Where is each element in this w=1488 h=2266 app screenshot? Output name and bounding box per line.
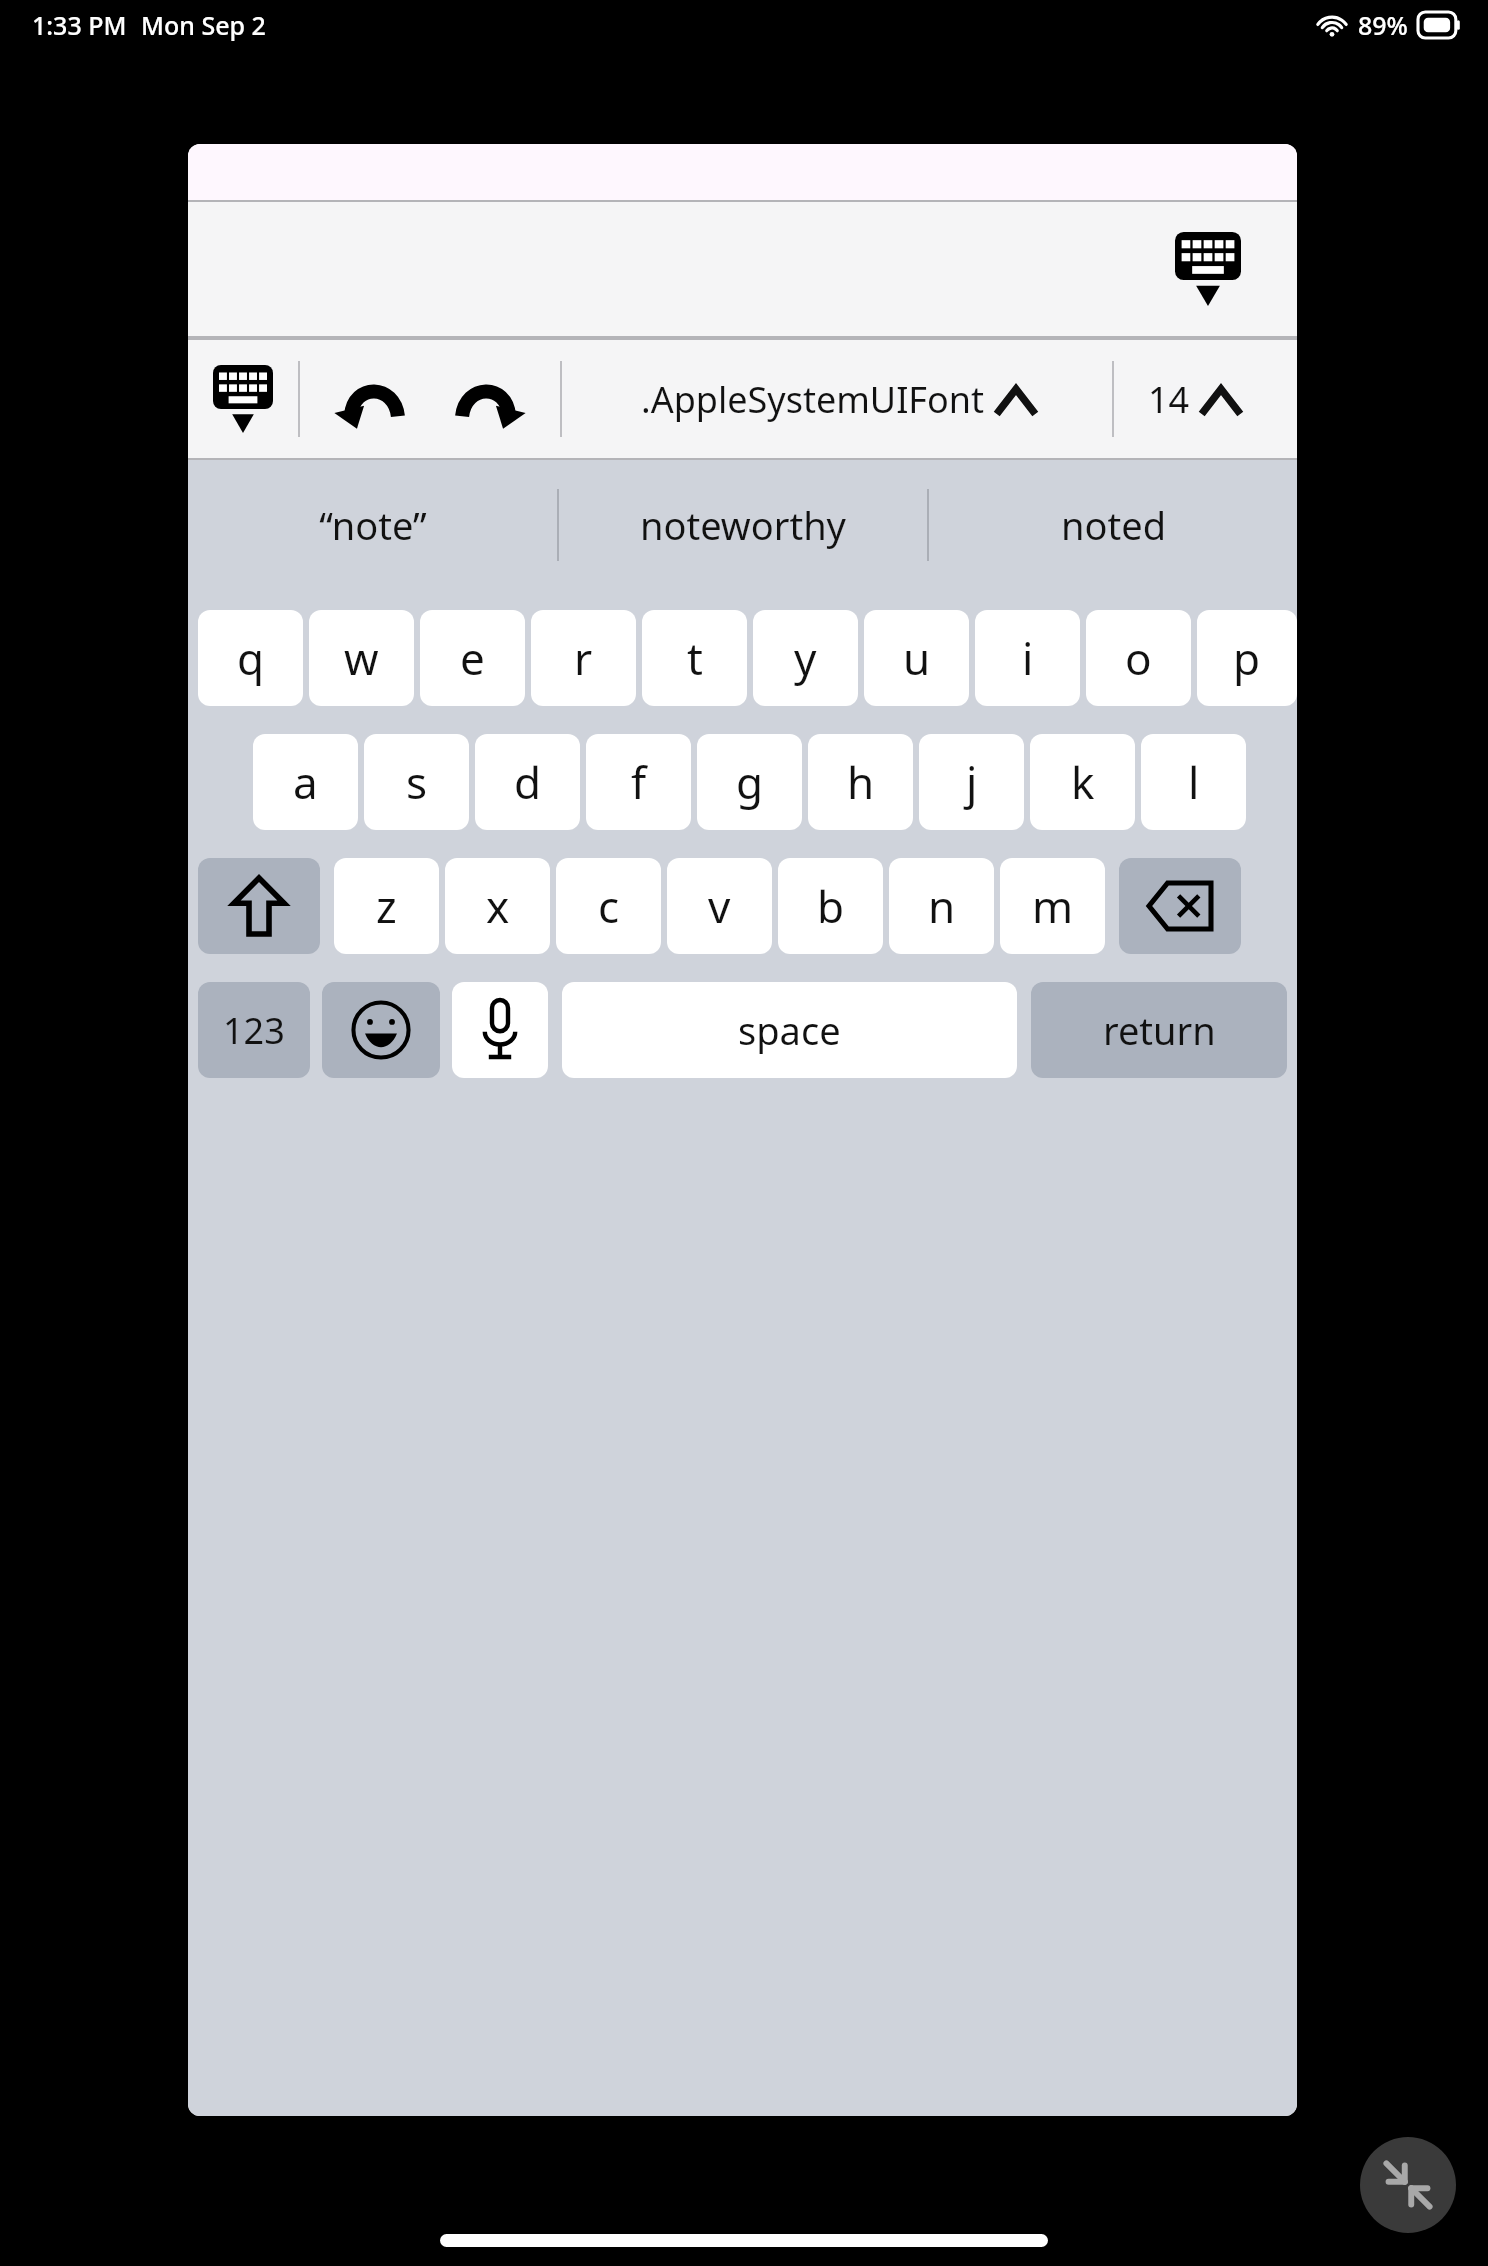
button[interactable]: a: [253, 734, 358, 830]
button[interactable]: b: [778, 858, 883, 954]
staticText: z: [376, 876, 397, 936]
button[interactable]: n: [889, 858, 994, 954]
button[interactable]: noteworthy: [559, 460, 927, 590]
staticText: return: [1103, 1004, 1216, 1056]
button[interactable]: s: [364, 734, 469, 830]
button[interactable]: m: [1000, 858, 1105, 954]
button[interactable]: Key: [1119, 858, 1241, 954]
button[interactable]: .AppleSystemUIFont: [562, 340, 1112, 458]
button[interactable]: h: [808, 734, 913, 830]
button[interactable]: d: [475, 734, 580, 830]
staticText: c: [598, 876, 620, 936]
button[interactable]: o: [1086, 610, 1191, 706]
staticText: .AppleSystemUIFont: [641, 375, 985, 424]
staticText: i: [1022, 628, 1034, 688]
staticText: j: [966, 752, 978, 812]
button[interactable]: noted: [929, 460, 1297, 590]
button[interactable]: t: [642, 610, 747, 706]
staticText: v: [708, 876, 731, 936]
button[interactable]: Hide keyboard: [188, 340, 298, 458]
button[interactable]: q: [198, 610, 303, 706]
staticText: b: [817, 876, 845, 936]
button[interactable]: v: [667, 858, 772, 954]
staticText: u: [903, 628, 931, 688]
button[interactable]: Dictation: [452, 982, 548, 1078]
button[interactable]: “note”: [188, 460, 557, 590]
staticText: p: [1233, 628, 1261, 688]
staticText: n: [928, 876, 956, 936]
staticText: y: [794, 628, 817, 688]
button[interactable]: return: [1031, 982, 1287, 1078]
staticText: s: [406, 752, 428, 812]
button[interactable]: 14: [1114, 340, 1297, 458]
button[interactable]: Undo: [300, 340, 430, 458]
button[interactable]: space: [562, 982, 1017, 1078]
button[interactable]: r: [531, 610, 636, 706]
staticText: g: [736, 752, 764, 812]
button[interactable]: g: [697, 734, 802, 830]
staticText: q: [237, 628, 265, 688]
staticText: noteworthy: [640, 499, 846, 551]
staticText: “note”: [319, 499, 427, 551]
button[interactable]: p: [1197, 610, 1297, 706]
button[interactable]: e: [420, 610, 525, 706]
button[interactable]: Shrink window: [1360, 2137, 1456, 2233]
button[interactable]: x: [445, 858, 550, 954]
button[interactable]: 123: [198, 982, 310, 1078]
button[interactable]: j: [919, 734, 1024, 830]
staticText: r: [574, 628, 593, 688]
button[interactable]: Emoji: [322, 982, 440, 1078]
staticText: m: [1032, 876, 1074, 936]
staticText: noted: [1061, 499, 1166, 551]
button[interactable]: w: [309, 610, 414, 706]
staticText: k: [1071, 752, 1095, 812]
staticText: 89%: [1358, 8, 1408, 42]
staticText: 123: [223, 1006, 285, 1055]
staticText: Mon Sep 2: [141, 8, 266, 42]
staticText: w: [344, 628, 379, 688]
button[interactable]: c: [556, 858, 661, 954]
staticText: d: [514, 752, 542, 812]
staticText: o: [1125, 628, 1152, 688]
staticText: e: [460, 628, 485, 688]
button[interactable]: Hide keyboard: [1165, 229, 1251, 309]
button[interactable]: l: [1141, 734, 1246, 830]
button[interactable]: Key: [198, 858, 320, 954]
button[interactable]: k: [1030, 734, 1135, 830]
button[interactable]: f: [586, 734, 691, 830]
staticText: t: [687, 628, 703, 688]
staticText: h: [847, 752, 875, 812]
button[interactable]: z: [334, 858, 439, 954]
staticText: l: [1188, 752, 1200, 812]
button[interactable]: y: [753, 610, 858, 706]
staticText: space: [738, 1004, 841, 1056]
button[interactable]: u: [864, 610, 969, 706]
staticText: 14: [1148, 375, 1190, 424]
button[interactable]: i: [975, 610, 1080, 706]
button[interactable]: Redo: [430, 340, 560, 458]
staticText: a: [293, 752, 318, 812]
staticText: x: [486, 876, 510, 936]
staticText: 1:33 PM: [32, 8, 127, 42]
staticText: f: [631, 752, 647, 812]
